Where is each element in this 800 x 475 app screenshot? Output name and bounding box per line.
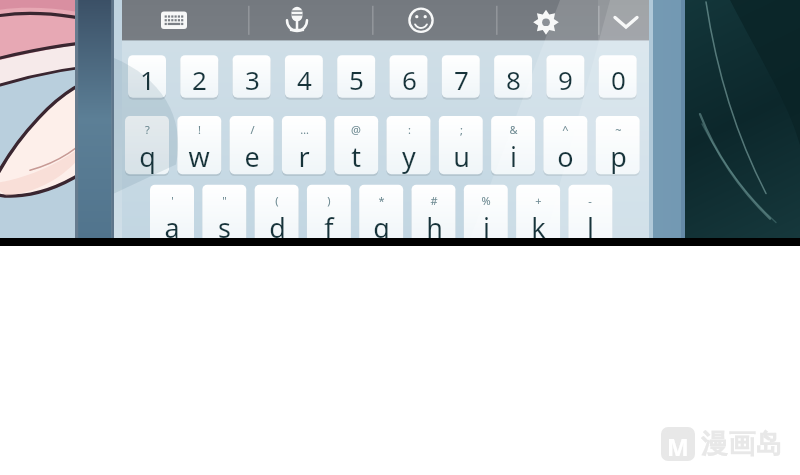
staticText: 漫画岛 [701,427,782,461]
button[interactable]: Emoji [372,0,496,42]
button[interactable]: 2 [180,57,218,101]
staticText: o [557,138,574,175]
button[interactable]: ( [255,191,299,251]
button[interactable]: % [464,191,508,251]
button[interactable]: ! [177,120,221,180]
staticText: ! [198,122,201,137]
staticText: + [535,193,542,208]
staticText: 4 [297,62,312,97]
staticText: 0 [611,62,626,97]
button[interactable]: # [412,191,456,251]
staticText: % [481,193,491,208]
staticText: 6 [402,62,417,97]
button[interactable]: ~ [596,120,640,180]
staticText: * [378,193,385,208]
staticText: & [509,122,518,137]
staticText: ^ [562,122,569,137]
staticText: r [298,138,310,175]
staticText: - [588,193,592,208]
staticText: ( [275,193,279,208]
button[interactable]: 6 [390,57,428,101]
staticText: w [188,138,210,175]
staticText: 7 [454,62,469,97]
staticText: 3 [245,62,260,97]
button[interactable]: / [230,120,274,180]
button[interactable]: ; [439,120,483,180]
staticText: 2 [192,62,207,97]
button[interactable]: 1 [128,57,166,101]
staticText: ' [171,193,174,208]
staticText: : [408,122,411,137]
button[interactable]: + [516,191,560,251]
staticText: l [587,209,594,246]
button[interactable]: ' [150,191,194,251]
button[interactable]: * [359,191,403,251]
staticText: 8 [506,62,521,97]
button[interactable]: Settings [496,0,598,42]
staticText: h [426,209,443,246]
staticText: s [218,209,231,246]
staticText: y [402,138,416,175]
staticText: f [324,209,334,246]
button[interactable]: & [491,120,535,180]
staticText: # [430,193,438,208]
button[interactable]: Voice input [248,0,372,42]
staticText: / [250,122,255,137]
staticText: … [300,122,309,137]
staticText: 5 [349,62,364,97]
staticText: e [244,138,260,175]
staticText: ; [460,122,463,137]
button[interactable]: … [282,120,326,180]
button[interactable]: 3 [233,57,271,101]
button[interactable]: 4 [285,57,323,101]
button[interactable]: ? [125,120,169,180]
button[interactable]: 0 [599,57,637,101]
staticText: q [139,138,156,175]
button[interactable]: " [202,191,246,251]
staticText: j [483,209,490,246]
staticText: p [610,138,627,175]
staticText: i [510,138,517,175]
button[interactable]: 7 [442,57,480,101]
staticText: k [531,209,546,246]
button[interactable]: 5 [337,57,375,101]
staticText: a [164,209,180,246]
button[interactable]: Hide keyboard [598,0,649,42]
staticText: 9 [558,62,573,97]
staticText: ) [327,193,331,208]
staticText: u [453,138,470,175]
staticText: M [667,431,689,457]
button[interactable]: @ [334,120,378,180]
staticText: t [351,138,361,175]
button[interactable]: 9 [546,57,584,101]
button[interactable]: 8 [494,57,532,101]
staticText: g [373,209,390,246]
staticText: " [222,193,227,208]
button[interactable]: : [387,120,431,180]
button[interactable]: ) [307,191,351,251]
button[interactable]: - [568,191,612,251]
staticText: ? [145,122,150,137]
button[interactable]: Keyboard layout [122,0,248,42]
staticText: ~ [615,122,622,137]
staticText: @ [351,122,361,137]
staticText: d [269,209,286,246]
button[interactable]: ^ [543,120,587,180]
staticText: 1 [140,62,155,97]
